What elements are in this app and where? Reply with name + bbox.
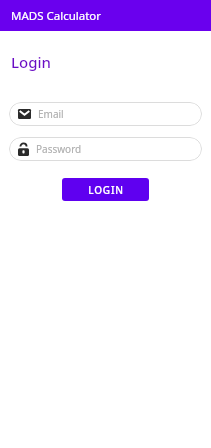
button[interactable]: Password xyxy=(9,137,202,161)
button[interactable]: LOGIN xyxy=(62,178,149,201)
staticText: MADS Calculator xyxy=(11,8,102,24)
button[interactable]: Email xyxy=(9,102,202,126)
staticText: Email xyxy=(38,107,64,121)
staticText: Login xyxy=(11,52,51,72)
staticText: Password xyxy=(36,142,82,156)
staticText: LOGIN xyxy=(88,183,124,197)
